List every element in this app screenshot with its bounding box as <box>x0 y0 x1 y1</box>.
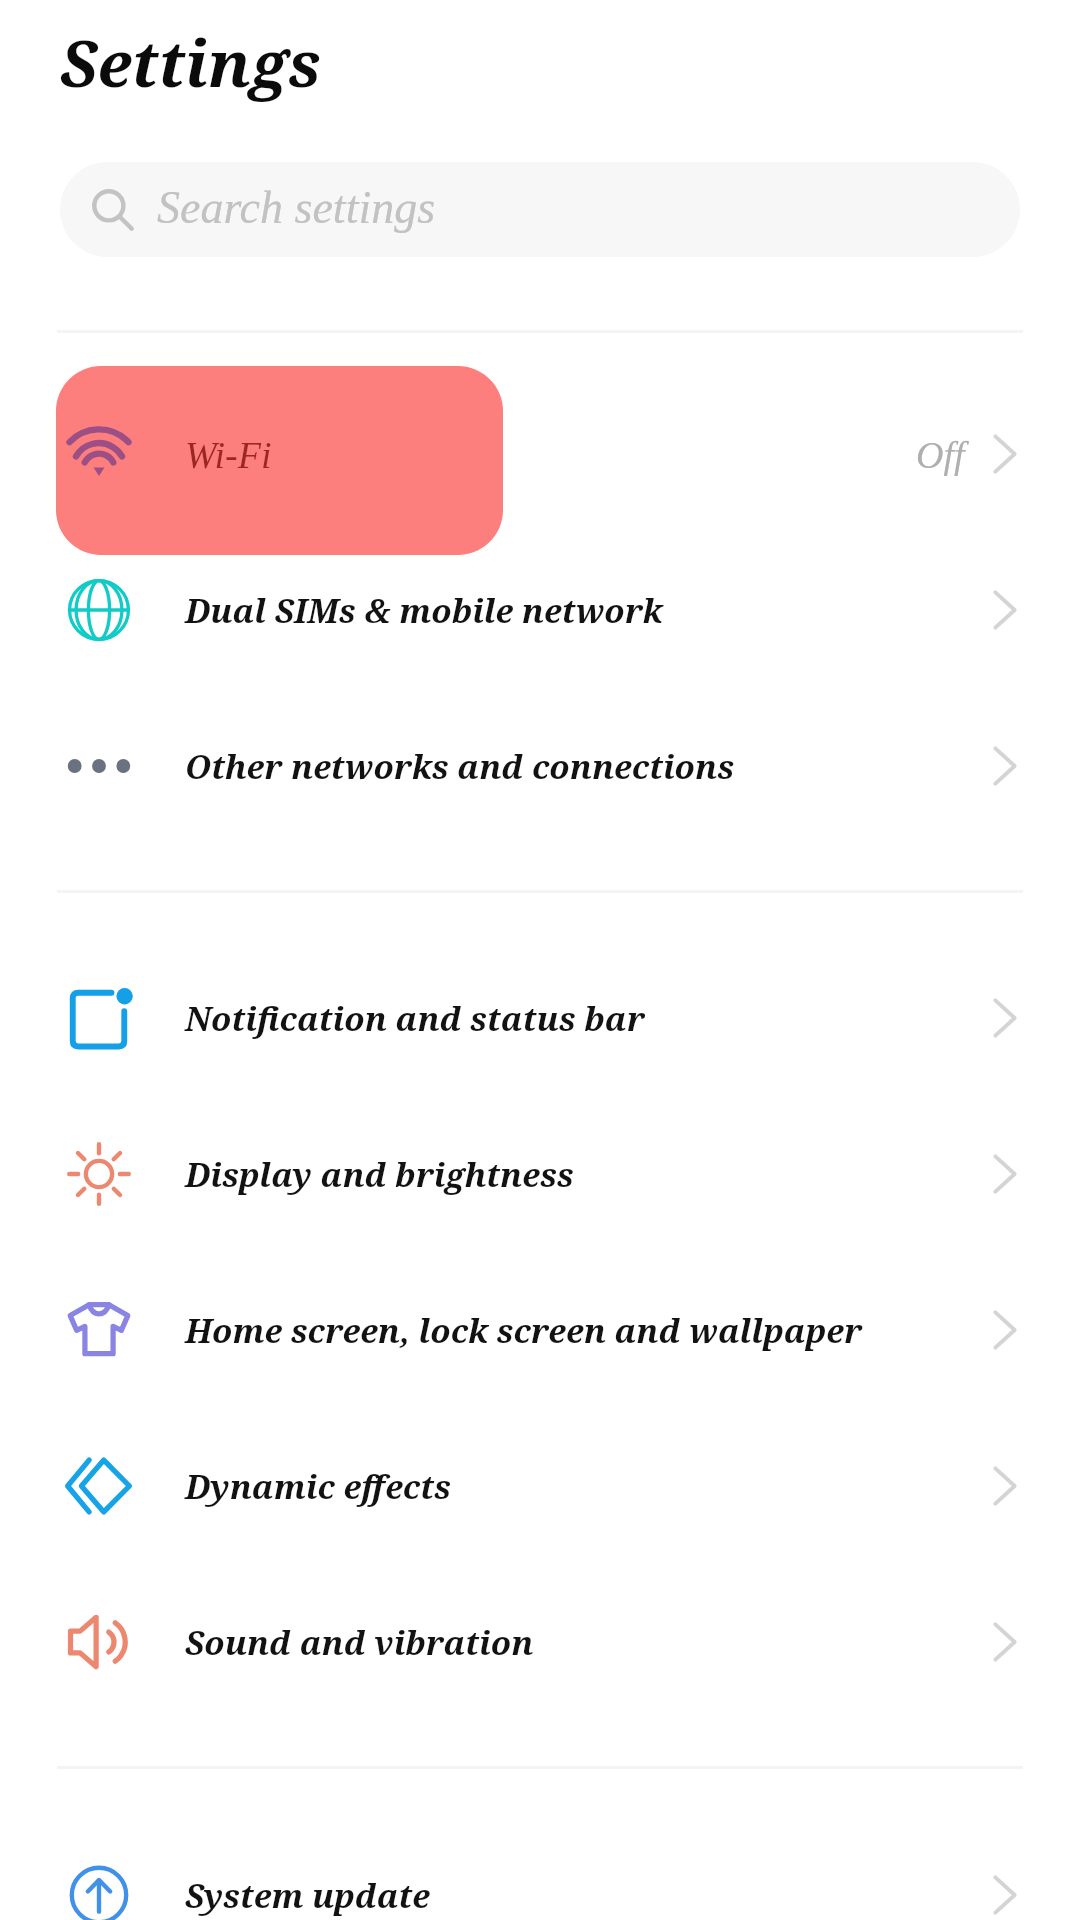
staticText: Wi-Fi <box>185 434 272 476</box>
staticText: Display and brightness <box>185 1152 574 1197</box>
button[interactable]: Other networks and connections <box>0 688 1080 844</box>
button[interactable]: Dual SIMs & mobile network <box>0 532 1080 688</box>
staticText: Sound and vibration <box>185 1620 534 1665</box>
staticText: Other networks and connections <box>185 744 735 789</box>
staticText: Dual SIMs & mobile network <box>185 588 663 633</box>
staticText: Dynamic effects <box>185 1464 451 1509</box>
button[interactable]: Home screen, lock screen and wallpaper <box>0 1252 1080 1408</box>
staticText: Home screen, lock screen and wallpaper <box>185 1308 863 1353</box>
button[interactable]: Display and brightness <box>0 1096 1080 1252</box>
staticText: Search settings <box>157 182 436 233</box>
staticText: Notification and status bar <box>185 996 645 1041</box>
button[interactable]: Search settings <box>60 162 1020 257</box>
button[interactable]: System update <box>0 1817 1080 1920</box>
button[interactable]: Sound and vibration <box>0 1564 1080 1720</box>
staticText: Off <box>916 434 965 476</box>
button[interactable]: Wi-Fi <box>0 376 1080 532</box>
button[interactable]: Dynamic effects <box>0 1408 1080 1564</box>
staticText: System update <box>185 1873 431 1918</box>
button[interactable]: Notification and status bar <box>0 940 1080 1096</box>
staticText: Settings <box>60 19 321 106</box>
